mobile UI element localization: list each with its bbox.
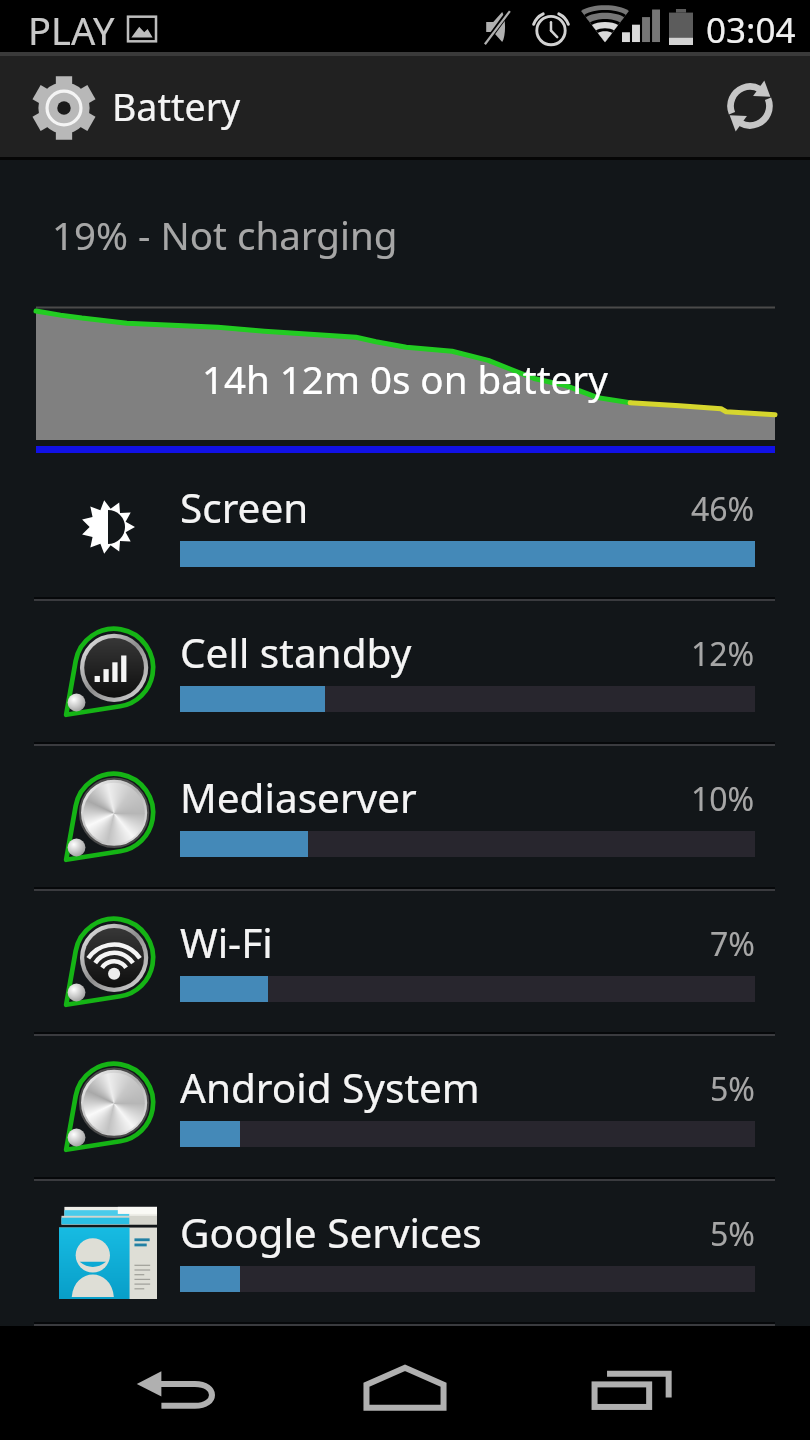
staticText: 03:04 [706, 6, 796, 54]
staticText: 5% [710, 1067, 755, 1111]
button[interactable]: Battery settings [0, 52, 280, 158]
button[interactable]: Screen [0, 455, 810, 599]
staticText: Cell standby [180, 625, 412, 680]
staticText: Battery [112, 81, 241, 132]
staticText: 5% [710, 1212, 755, 1256]
staticText: 7% [710, 922, 755, 966]
button[interactable]: Refresh [690, 53, 810, 159]
button[interactable]: Google Services [0, 1180, 810, 1324]
staticText: 46% [691, 487, 755, 531]
button[interactable]: Wi-Fi [0, 890, 810, 1034]
staticText: 14h 12m 0s on battery [202, 353, 608, 405]
staticText: Wi-Fi [180, 915, 273, 970]
staticText: Mediaserver [180, 770, 417, 825]
button[interactable]: Back [89, 1332, 269, 1440]
staticText: 10% [691, 777, 755, 821]
staticText: 12% [691, 632, 755, 676]
staticText: Screen [180, 480, 309, 535]
button[interactable]: Mediaserver [0, 745, 810, 889]
staticText: 19% - Not charging [52, 209, 398, 261]
staticText: PLAY [28, 4, 115, 56]
staticText: Google Services [180, 1205, 482, 1260]
button[interactable]: Cell standby [0, 600, 810, 744]
button[interactable]: Android System [0, 1035, 810, 1179]
button[interactable]: Recent apps [542, 1331, 722, 1440]
button[interactable]: Home [315, 1330, 495, 1440]
staticText: Android System [180, 1060, 480, 1115]
